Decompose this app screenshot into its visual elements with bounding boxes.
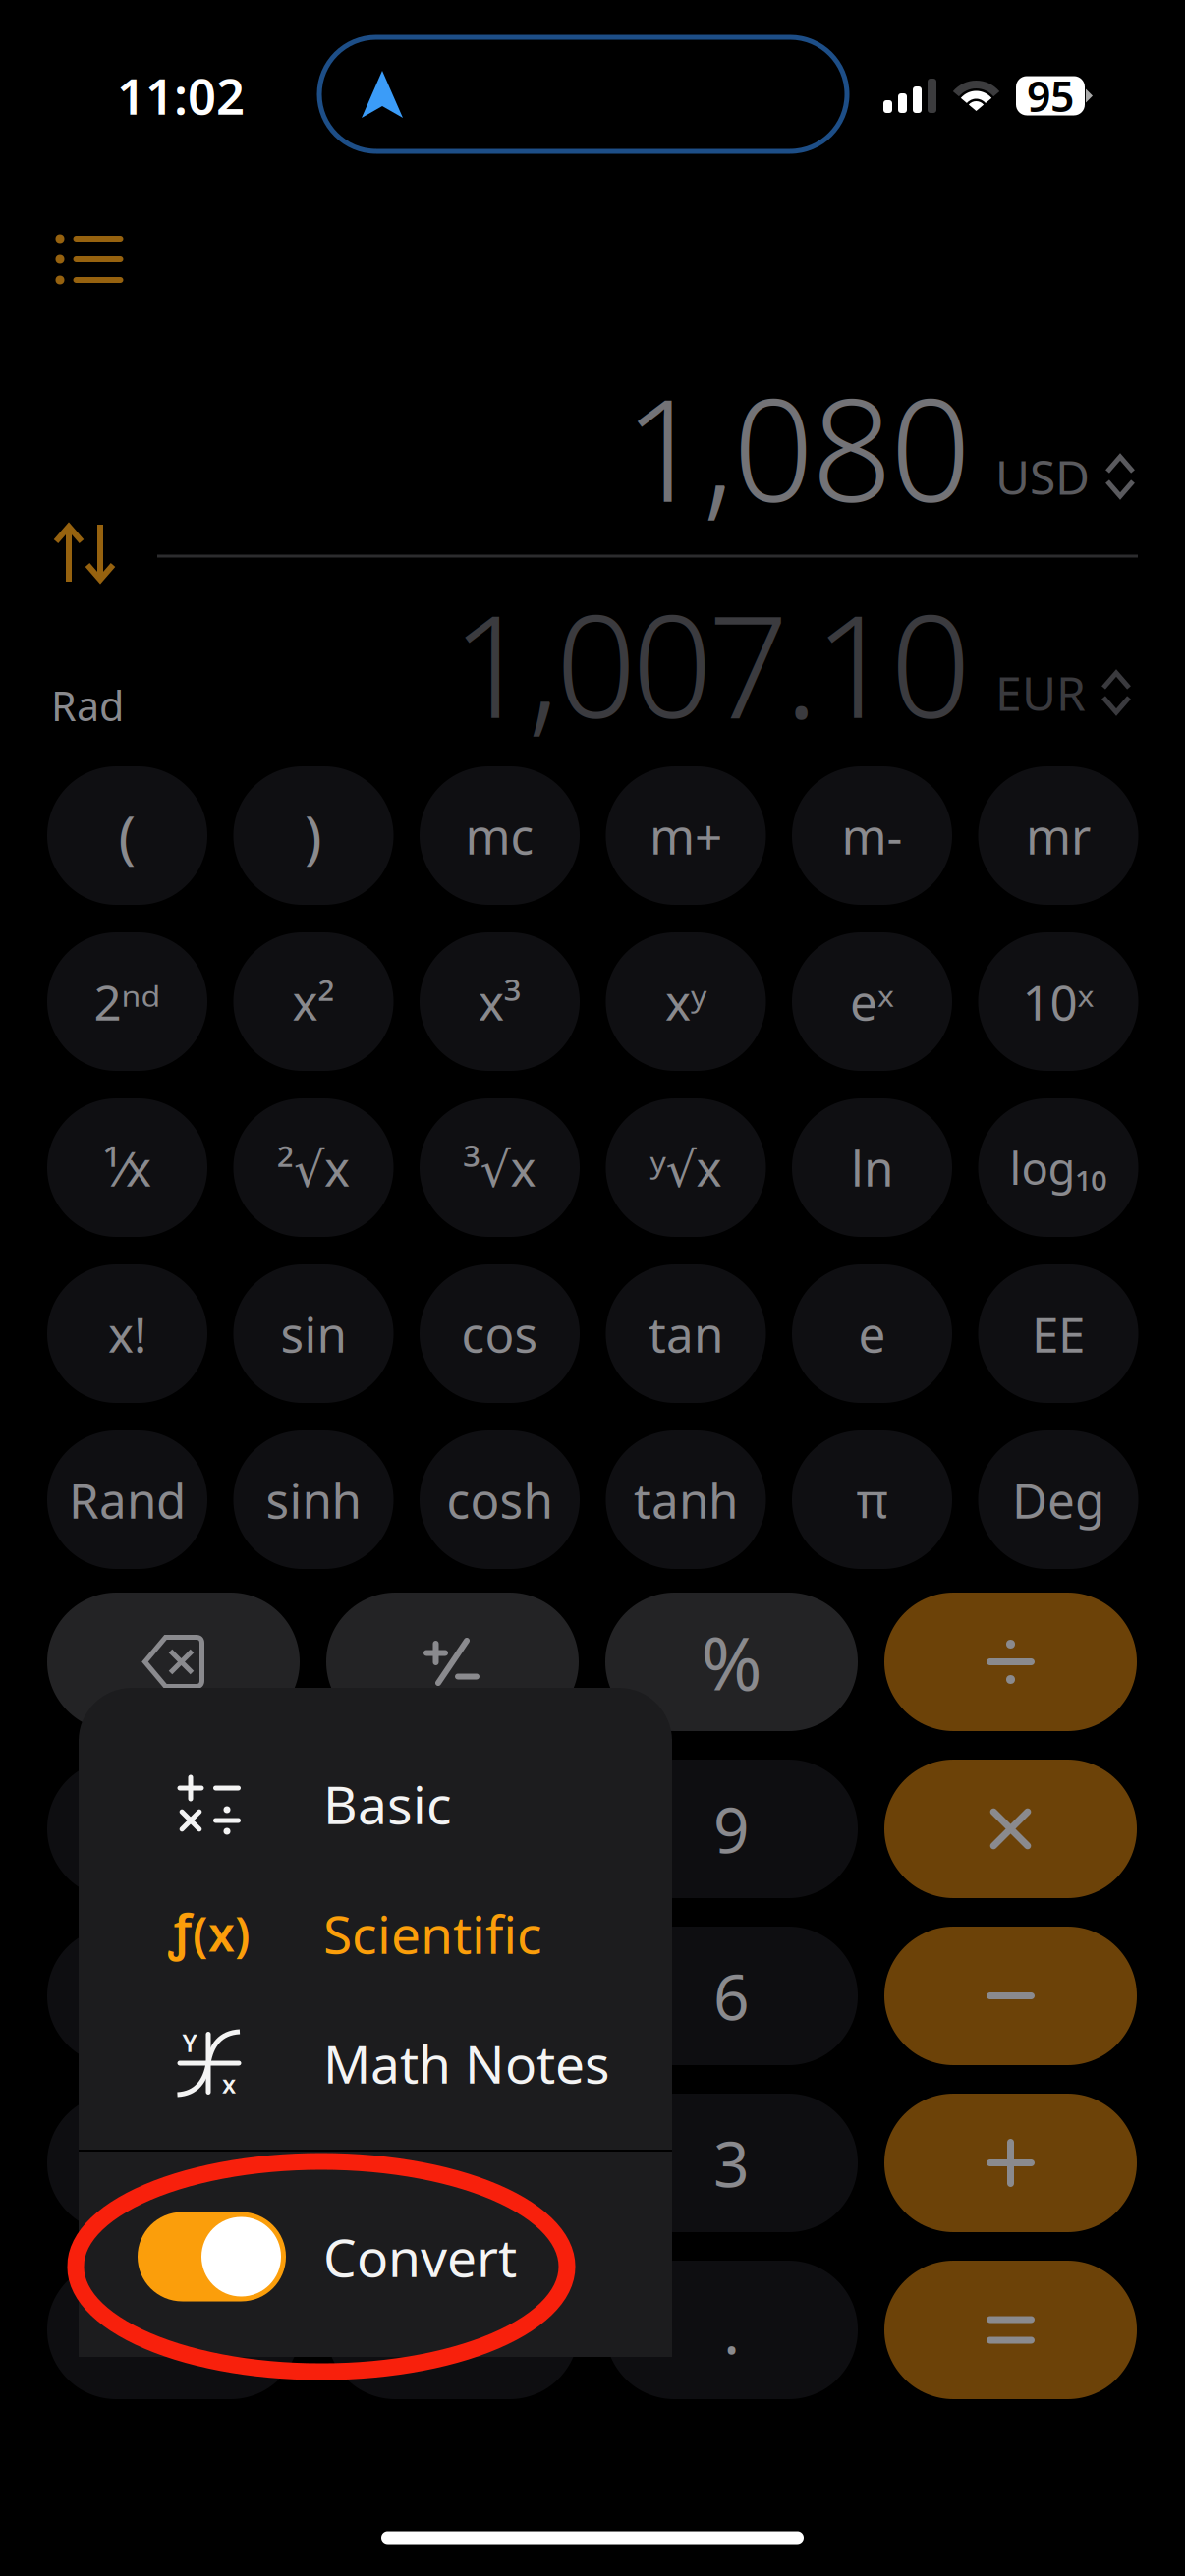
staticText: tanh bbox=[634, 1467, 738, 1532]
button[interactable]: 1 bbox=[47, 2094, 300, 2232]
button[interactable]: Rad bbox=[28, 666, 146, 745]
button[interactable]: xʸ bbox=[606, 932, 766, 1071]
staticText: % bbox=[701, 1613, 762, 1711]
staticText: Y bbox=[182, 2026, 197, 2059]
staticText: Convert bbox=[323, 2222, 517, 2291]
button[interactable]: ( bbox=[47, 766, 207, 905]
button[interactable]: sinh bbox=[233, 1430, 394, 1569]
staticText: ²√x bbox=[277, 1135, 350, 1200]
staticText: 2ⁿᵈ bbox=[94, 969, 161, 1034]
staticText: eˣ bbox=[850, 969, 894, 1034]
button[interactable]: sin bbox=[233, 1264, 394, 1403]
button[interactable]: ¹⁄x bbox=[47, 1098, 207, 1237]
button[interactable]: Delete bbox=[47, 1593, 300, 1731]
button[interactable]: ƒ bbox=[79, 1869, 672, 1998]
staticText: EE bbox=[1032, 1301, 1085, 1366]
staticText: ʸ√x bbox=[650, 1135, 722, 1200]
staticText: 10ˣ bbox=[1022, 969, 1094, 1034]
button[interactable]: π bbox=[792, 1430, 952, 1569]
button[interactable]: Convert bbox=[79, 2156, 672, 2357]
button[interactable]: 8 bbox=[326, 1760, 579, 1898]
button[interactable]: Plus bbox=[884, 2094, 1137, 2232]
button[interactable]: Deg bbox=[978, 1430, 1138, 1569]
button[interactable]: 2 bbox=[326, 2094, 579, 2232]
button[interactable]: x² bbox=[233, 932, 394, 1071]
button[interactable]: EUR bbox=[995, 648, 1153, 737]
staticText: USD bbox=[995, 445, 1090, 508]
staticText: m- bbox=[842, 803, 903, 868]
button[interactable]: Basic bbox=[79, 1739, 672, 1869]
button[interactable]: mr bbox=[978, 766, 1138, 905]
button[interactable]: 10ˣ bbox=[978, 932, 1138, 1071]
button[interactable]: 2ⁿᵈ bbox=[47, 932, 207, 1071]
button[interactable]: e bbox=[792, 1264, 952, 1403]
button[interactable]: 6 bbox=[605, 1927, 858, 2065]
staticText: 11:02 bbox=[117, 62, 245, 128]
button[interactable]: log₁₀ bbox=[978, 1098, 1138, 1237]
button[interactable]: EE bbox=[978, 1264, 1138, 1403]
staticText: x! bbox=[108, 1301, 146, 1366]
staticText: 1,007.10 bbox=[451, 569, 971, 757]
button[interactable]: Minus bbox=[884, 1927, 1137, 2065]
staticText: (x) bbox=[193, 1902, 251, 1965]
button[interactable]: . bbox=[605, 2261, 858, 2399]
staticText: sin bbox=[281, 1301, 346, 1366]
staticText: EUR bbox=[995, 661, 1086, 724]
button[interactable]: Multiply bbox=[884, 1760, 1137, 1898]
button[interactable]: ʸ√x bbox=[606, 1098, 766, 1237]
staticText: log₁₀ bbox=[1010, 1138, 1107, 1197]
staticText: . bbox=[723, 2288, 740, 2372]
staticText: e bbox=[858, 1301, 886, 1366]
button[interactable]: USD bbox=[995, 432, 1153, 521]
staticText: tan bbox=[649, 1301, 723, 1366]
button[interactable]: 9 bbox=[605, 1760, 858, 1898]
staticText: mr bbox=[1026, 803, 1091, 868]
button[interactable]: ³√x bbox=[420, 1098, 580, 1237]
button[interactable]: Divide bbox=[884, 1593, 1137, 1731]
staticText: Scientific bbox=[323, 1899, 542, 1968]
button[interactable]: 4 bbox=[47, 1927, 300, 2065]
button[interactable]: x³ bbox=[420, 932, 580, 1071]
button[interactable]: Swap currencies bbox=[27, 496, 144, 610]
button[interactable]: eˣ bbox=[792, 932, 952, 1071]
staticText: x bbox=[222, 2067, 236, 2100]
button[interactable]: ) bbox=[233, 766, 394, 905]
staticText: 4 bbox=[155, 1954, 192, 2038]
button[interactable]: m- bbox=[792, 766, 952, 905]
button[interactable]: cos bbox=[420, 1264, 580, 1403]
button[interactable]: Equals bbox=[884, 2261, 1137, 2399]
button[interactable]: tanh bbox=[606, 1430, 766, 1569]
staticText: π bbox=[856, 1467, 888, 1532]
staticText: Rand bbox=[69, 1467, 186, 1532]
button[interactable]: 3 bbox=[605, 2094, 858, 2232]
staticText: 2 bbox=[434, 2121, 471, 2205]
staticText: 7 bbox=[155, 1787, 192, 1871]
button[interactable]: m+ bbox=[606, 766, 766, 905]
button[interactable]: History bbox=[16, 193, 163, 326]
staticText: ln bbox=[851, 1135, 893, 1200]
staticText: 0 bbox=[155, 2288, 192, 2372]
button[interactable]: Plus minus bbox=[326, 1593, 579, 1731]
staticText: cos bbox=[461, 1301, 538, 1366]
staticText: cosh bbox=[447, 1467, 553, 1532]
staticText: Rad bbox=[51, 678, 124, 732]
button[interactable]: 7 bbox=[47, 1760, 300, 1898]
button[interactable]: mc bbox=[420, 766, 580, 905]
staticText: 5 bbox=[434, 1954, 471, 2038]
button[interactable]: ln bbox=[792, 1098, 952, 1237]
staticText: 95 bbox=[1027, 68, 1074, 124]
button[interactable]: 0 bbox=[47, 2261, 300, 2399]
button[interactable]: x! bbox=[47, 1264, 207, 1403]
staticText: ³√x bbox=[463, 1135, 536, 1200]
button[interactable]: 5 bbox=[326, 1927, 579, 2065]
button[interactable]: 0 bbox=[326, 2261, 579, 2399]
staticText: x³ bbox=[479, 969, 521, 1034]
button[interactable]: tan bbox=[606, 1264, 766, 1403]
button[interactable]: Y bbox=[79, 1998, 672, 2128]
staticText: ) bbox=[305, 797, 322, 874]
staticText: 0 bbox=[434, 2288, 471, 2372]
button[interactable]: cosh bbox=[420, 1430, 580, 1569]
button[interactable]: ²√x bbox=[233, 1098, 394, 1237]
button[interactable]: Rand bbox=[47, 1430, 207, 1569]
button[interactable]: Percent bbox=[605, 1593, 858, 1731]
